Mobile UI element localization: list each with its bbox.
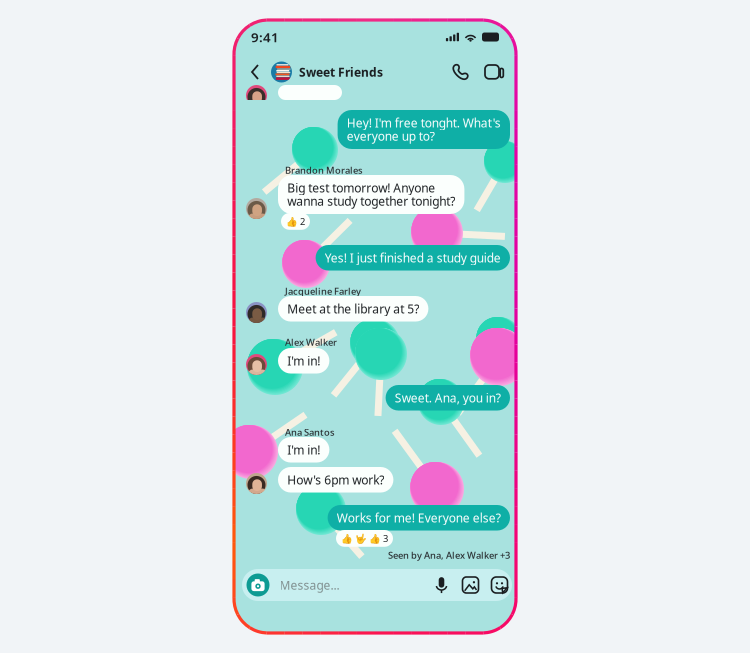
staticText: 9:41: [251, 28, 279, 46]
staticText: Brandon Morales: [285, 164, 363, 176]
button[interactable]: Stickers: [478, 577, 507, 593]
button[interactable]: Camera: [246, 573, 269, 596]
staticText: Meet at the library at 5?: [287, 301, 419, 317]
staticText: wanna study together tonight?: [287, 193, 455, 209]
button[interactable]: Back: [246, 56, 264, 88]
staticText: Big test tomorrow! Anyone: [287, 180, 435, 196]
button[interactable]: Video call: [470, 57, 504, 87]
staticText: Alex Walker: [285, 336, 337, 348]
staticText: Message...: [279, 577, 339, 593]
staticText: Hey! I'm free tonght. What's: [347, 115, 501, 131]
staticText: 👍 🤟 👍 3: [341, 532, 388, 545]
button[interactable]: Sweet Friends: [264, 54, 383, 89]
staticText: I'm in!: [287, 442, 320, 458]
staticText: Sweet. Ana, you in?: [395, 390, 501, 406]
staticText: Seen by Ana, Alex Walker +3: [388, 549, 510, 561]
staticText: Works for me! Everyone else?: [337, 510, 501, 526]
staticText: Ana Santos: [285, 426, 335, 438]
button[interactable]: Audio call: [451, 57, 470, 87]
staticText: I'm in!: [287, 353, 320, 369]
staticText: 👍 2: [286, 215, 305, 228]
button[interactable]: Voice message: [433, 577, 449, 593]
staticText: Yes! I just finished a study guide: [325, 250, 501, 266]
button[interactable]: Photos: [449, 577, 478, 593]
staticText: Sweet Friends: [299, 64, 383, 80]
staticText: Jacqueline Farley: [285, 285, 361, 297]
staticText: everyone up to?: [347, 128, 435, 144]
staticText: How's 6pm work?: [287, 472, 384, 488]
